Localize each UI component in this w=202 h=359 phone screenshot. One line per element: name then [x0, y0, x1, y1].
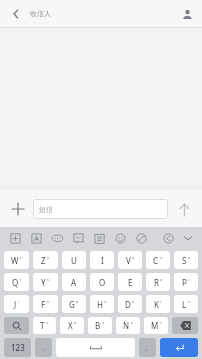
button[interactable]: 短信 — [33, 199, 168, 219]
button[interactable]: X — [60, 317, 84, 334]
button[interactable]: Search — [4, 317, 29, 334]
staticText: A — [71, 277, 77, 288]
button[interactable]: G — [62, 295, 86, 313]
button[interactable]: Y — [33, 273, 58, 291]
button[interactable]: Back — [4, 2, 28, 26]
staticText: D — [125, 299, 131, 310]
staticText: C — [153, 255, 159, 266]
staticText: u — [47, 299, 50, 304]
staticText: L — [182, 299, 187, 310]
staticText: G — [69, 299, 75, 310]
button[interactable]: E — [118, 273, 142, 291]
button[interactable]: Enter — [160, 338, 198, 357]
staticText: E — [128, 277, 133, 288]
staticText: e — [131, 320, 134, 325]
staticText: u — [188, 299, 191, 304]
button[interactable]: Q — [4, 273, 29, 291]
staticText: i — [160, 320, 162, 325]
staticText: a — [188, 255, 191, 260]
button[interactable]: Clipboard — [89, 227, 110, 249]
staticText: a — [74, 320, 77, 325]
staticText: i — [188, 277, 190, 282]
button[interactable]: L — [174, 295, 198, 313]
staticText: K — [154, 299, 159, 310]
staticText: a — [76, 299, 79, 304]
button[interactable]: V — [118, 251, 142, 269]
staticText: o — [104, 299, 107, 304]
button[interactable]: Keyboard — [4, 227, 26, 249]
button[interactable]: K — [146, 295, 170, 313]
button[interactable]: Chat — [68, 227, 89, 249]
button[interactable]: W — [4, 251, 29, 269]
staticText: i — [18, 299, 20, 304]
staticText: ， — [41, 344, 47, 352]
staticText: F — [41, 299, 46, 310]
staticText: u — [46, 320, 49, 325]
button[interactable]: Space — [56, 338, 135, 357]
staticText: e — [132, 299, 135, 304]
staticText: T — [40, 320, 45, 331]
button[interactable]: Z — [33, 251, 58, 269]
staticText: u — [132, 255, 135, 260]
button[interactable]: Add attachment — [6, 197, 30, 221]
staticText: B — [95, 320, 101, 331]
button[interactable]: Hide keyboard — [178, 228, 198, 248]
staticText: u — [47, 277, 50, 282]
staticText: O — [99, 277, 106, 288]
button[interactable]: O — [90, 273, 114, 291]
staticText: H — [97, 299, 103, 310]
button[interactable]: 123 — [4, 338, 31, 357]
staticText: o — [47, 255, 50, 260]
button[interactable]: H — [90, 295, 114, 313]
staticText: Z — [41, 255, 46, 266]
button[interactable]: B — [88, 317, 112, 334]
staticText: V — [126, 255, 131, 266]
button[interactable]: N — [116, 317, 140, 334]
staticText: a — [160, 277, 163, 282]
staticText: o — [102, 320, 105, 325]
staticText: 短信 — [39, 205, 53, 214]
staticText: e — [20, 255, 23, 260]
staticText: Y — [41, 277, 46, 288]
staticText: W — [11, 255, 19, 266]
button[interactable]: R — [146, 273, 170, 291]
button[interactable]: ， — [35, 338, 52, 357]
staticText: 。 — [145, 344, 151, 352]
staticText: X — [68, 320, 73, 331]
button[interactable]: C — [146, 251, 170, 269]
button[interactable]: Emoji — [110, 227, 131, 249]
button[interactable]: M — [144, 317, 168, 334]
button[interactable]: S — [174, 251, 198, 269]
staticText: N — [123, 320, 130, 331]
button[interactable]: D — [118, 295, 142, 313]
staticText: P — [182, 277, 187, 288]
button[interactable]: J — [4, 295, 29, 313]
button[interactable]: F — [33, 295, 58, 313]
button[interactable]: U — [62, 251, 86, 269]
staticText: J — [14, 299, 17, 310]
button[interactable]: A — [62, 273, 86, 291]
staticText: o — [160, 255, 163, 260]
button[interactable]: Contacts — [177, 4, 197, 24]
staticText: i — [160, 299, 162, 304]
button[interactable]: P — [174, 273, 198, 291]
button[interactable]: T — [33, 317, 56, 334]
button[interactable]: Settings — [158, 228, 178, 248]
staticText: 收信人 — [30, 9, 51, 18]
staticText: S — [182, 255, 187, 266]
staticText: i — [20, 277, 22, 282]
staticText: Q — [12, 277, 19, 288]
staticText: 123 — [11, 342, 25, 353]
button[interactable]: Text style — [26, 227, 47, 249]
staticText: U — [71, 255, 77, 266]
button[interactable]: I — [90, 251, 114, 269]
staticText: R — [154, 277, 159, 288]
button[interactable]: Backspace — [172, 317, 198, 334]
staticText: M — [151, 320, 159, 331]
button[interactable]: Send — [172, 197, 196, 221]
button[interactable]: Stickers — [131, 227, 152, 249]
staticText: I — [101, 255, 104, 266]
button[interactable]: Voice — [47, 227, 68, 249]
button[interactable]: 。 — [139, 338, 156, 357]
